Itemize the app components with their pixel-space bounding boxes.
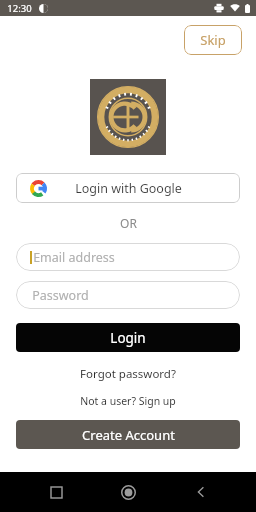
staticText: Skip — [200, 31, 226, 49]
staticText: Create Account — [82, 426, 175, 444]
button[interactable]: Forgot password? — [0, 366, 256, 382]
staticText: OR — [120, 215, 137, 231]
staticText: Login — [110, 329, 146, 347]
button[interactable]: Not a user? Sign up — [0, 394, 256, 408]
button[interactable]: Back — [184, 475, 218, 509]
staticText: Email address — [33, 249, 115, 266]
staticText: Login with Google — [75, 180, 182, 197]
staticText: Not a user? Sign up — [80, 394, 176, 408]
staticText: 12:30 — [7, 2, 32, 15]
button[interactable]: Email address — [16, 243, 240, 271]
button[interactable]: Skip — [184, 25, 242, 55]
button[interactable]: Login with Google — [16, 173, 240, 203]
staticText: Password — [32, 287, 89, 304]
button[interactable]: Login — [16, 323, 240, 352]
button[interactable]: Recents — [39, 475, 73, 509]
button[interactable]: Home — [111, 475, 145, 509]
button[interactable]: Password — [16, 281, 240, 309]
button[interactable]: Create Account — [16, 420, 240, 449]
staticText: Forgot password? — [80, 366, 176, 382]
